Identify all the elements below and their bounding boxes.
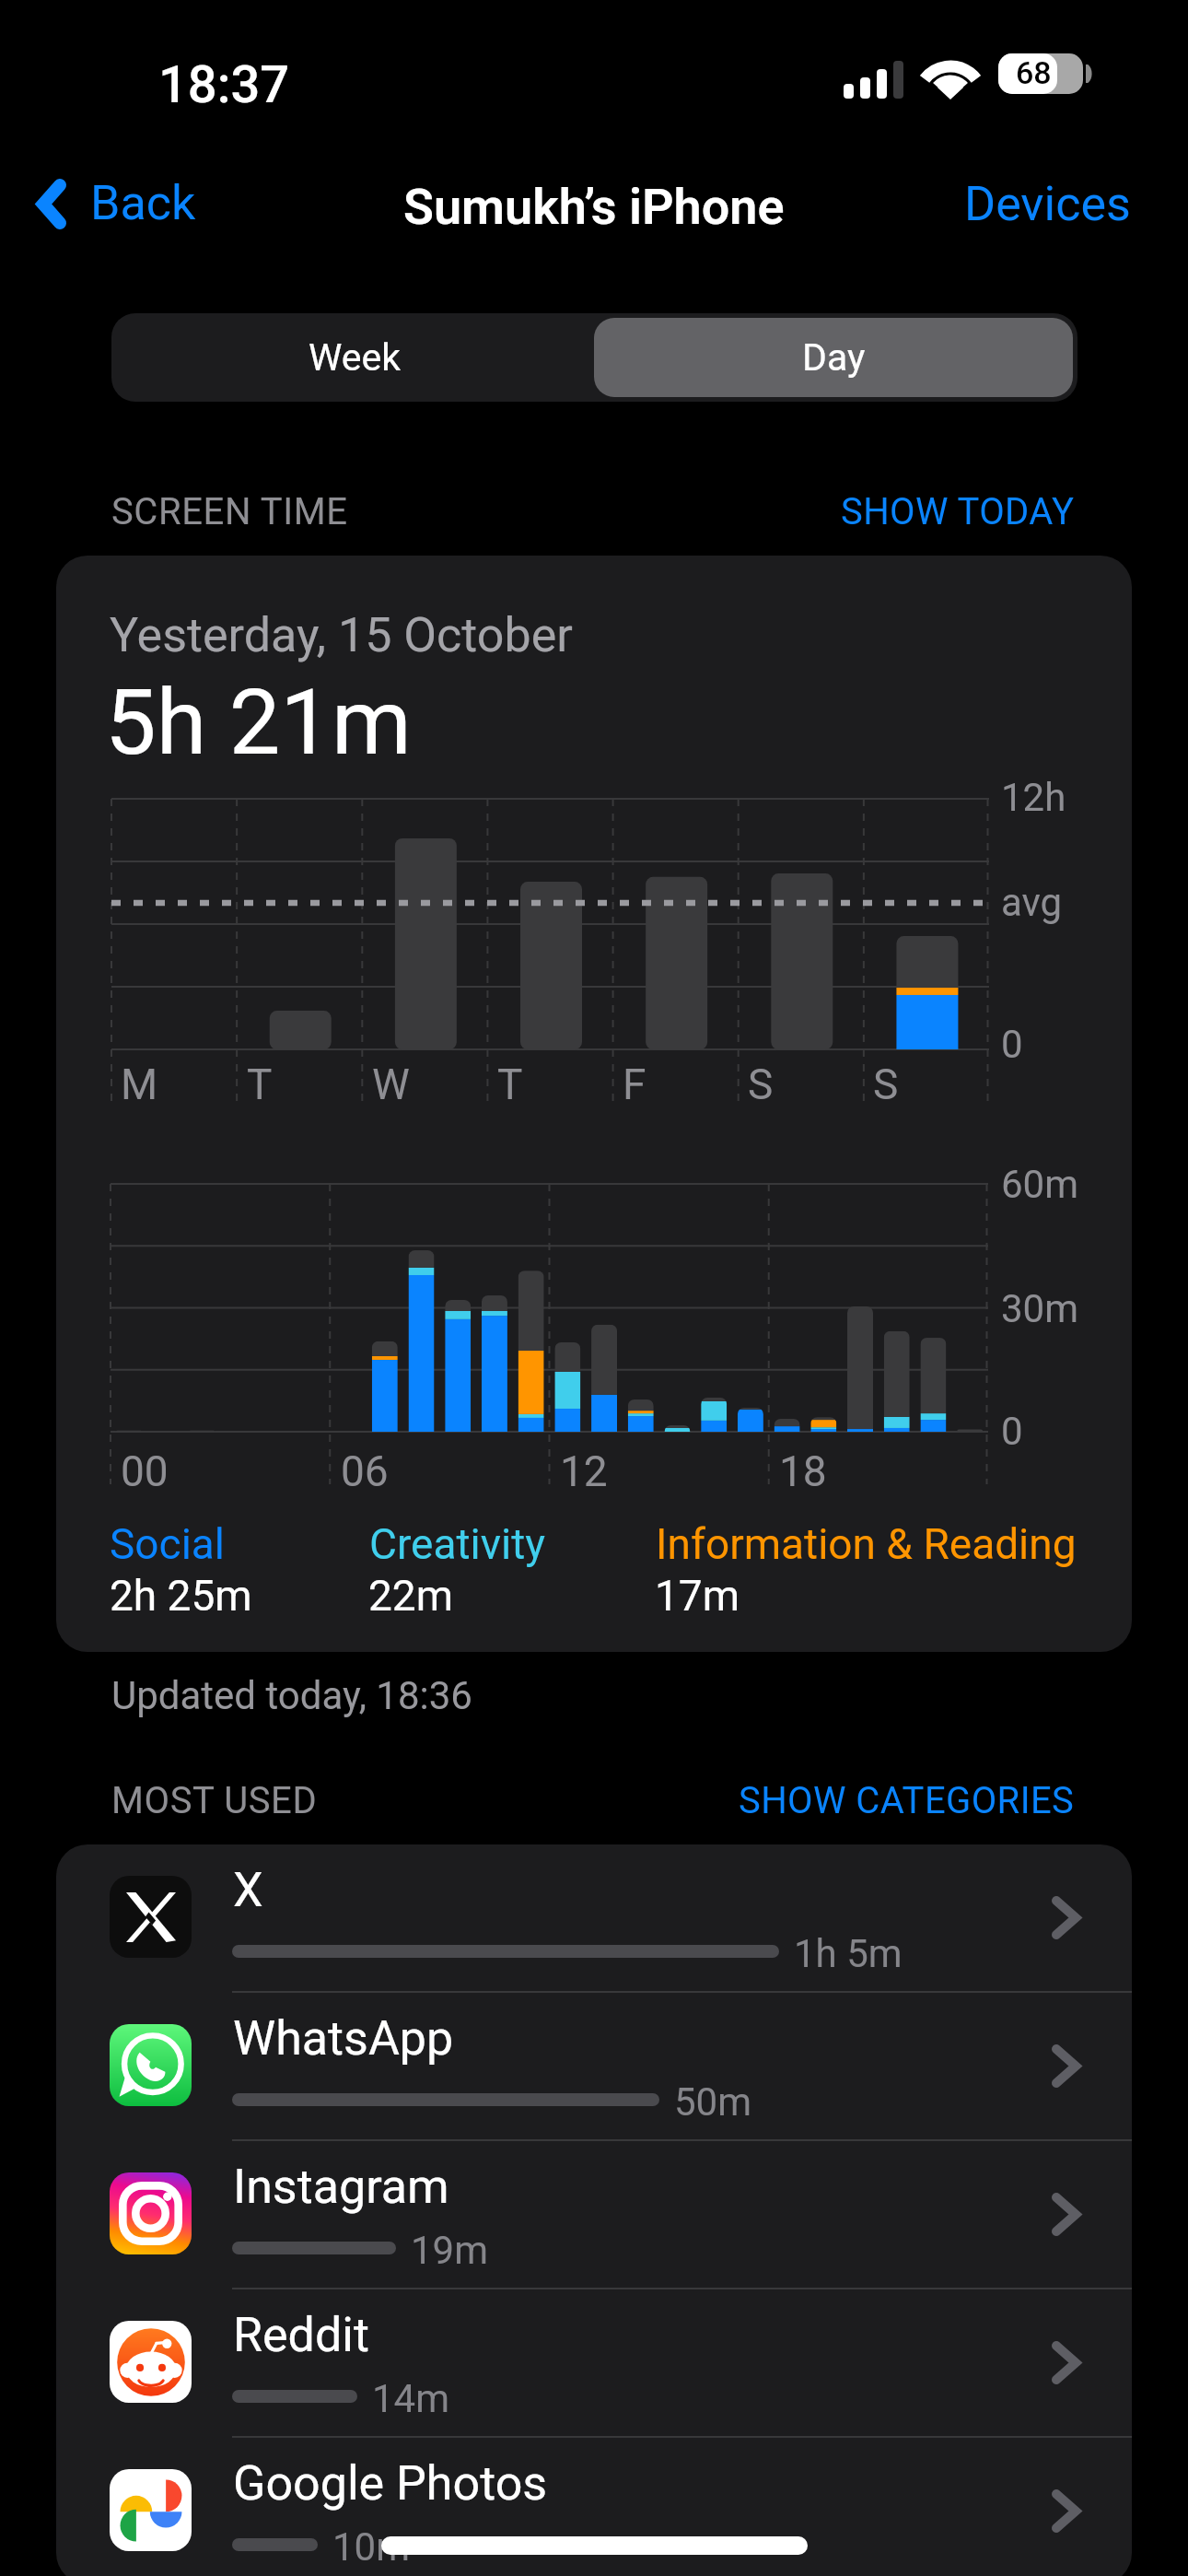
staticText: Instagram [233, 2159, 449, 2215]
staticText: 1h 5m [794, 1931, 903, 1976]
staticText: S [873, 1060, 899, 1109]
staticText: 12 [560, 1446, 608, 1496]
staticText: T [247, 1060, 273, 1109]
staticText: Social [110, 1519, 226, 1569]
staticText: 18:37 [158, 54, 290, 115]
staticText: 00 [121, 1446, 169, 1496]
button[interactable]: Reddit [56, 2289, 1132, 2436]
staticText: 68 [1016, 54, 1052, 91]
button[interactable]: Back [22, 161, 213, 247]
button[interactable]: Google Photos [56, 2438, 1132, 2576]
staticText: 0 [1001, 1022, 1023, 1067]
button[interactable]: Day [594, 318, 1073, 397]
staticText: 22m [368, 1571, 454, 1621]
button[interactable]: WhatsApp [56, 1993, 1132, 2139]
staticText: 30m [1001, 1286, 1079, 1331]
staticText: 06 [341, 1446, 389, 1496]
staticText: 5h 21m [105, 669, 412, 776]
staticText: SHOW CATEGORIES [739, 1779, 1075, 1822]
staticText: Creativity [369, 1519, 546, 1569]
staticText: 17m [655, 1571, 740, 1621]
staticText: WhatsApp [233, 2010, 454, 2067]
staticText: T [497, 1060, 523, 1109]
staticText: 19m [411, 2228, 489, 2273]
staticText: Reddit [233, 2307, 369, 2363]
staticText: 0 [1001, 1409, 1023, 1454]
staticText: 14m [372, 2376, 450, 2421]
staticText: Google Photos [233, 2455, 548, 2512]
staticText: 10m [332, 2524, 411, 2570]
staticText: W [372, 1060, 410, 1109]
staticText: 2h 25m [110, 1571, 252, 1621]
staticText: S [748, 1060, 774, 1109]
staticText: SCREEN TIME [111, 490, 348, 533]
button[interactable]: X [56, 1844, 1132, 1991]
staticText: MOST USED [111, 1779, 318, 1822]
button[interactable]: Devices [931, 161, 1188, 247]
button[interactable]: Week [116, 318, 594, 397]
staticText: Devices [964, 176, 1131, 232]
staticText: Information & Reading [656, 1519, 1077, 1569]
staticText: Week [309, 335, 402, 380]
staticText: SHOW TODAY [841, 490, 1075, 533]
staticText: Updated today, 18:36 [111, 1673, 472, 1718]
staticText: 18 [779, 1446, 827, 1496]
staticText: F [623, 1060, 646, 1109]
button[interactable]: SHOW CATEGORIES [683, 1766, 1130, 1835]
staticText: X [233, 1862, 263, 1918]
staticText: Yesterday, 15 October [110, 607, 573, 663]
button[interactable]: SHOW TODAY [786, 477, 1130, 546]
staticText: Sumukh’s iPhone [403, 178, 785, 236]
staticText: M [121, 1060, 158, 1109]
staticText: Back [90, 175, 196, 231]
staticText: 60m [1001, 1162, 1079, 1207]
staticText: 50m [674, 2079, 752, 2125]
staticText: Day [802, 335, 866, 380]
button[interactable]: Instagram [56, 2141, 1132, 2288]
staticText: avg [1001, 880, 1063, 925]
staticText: 12h [1001, 775, 1066, 820]
